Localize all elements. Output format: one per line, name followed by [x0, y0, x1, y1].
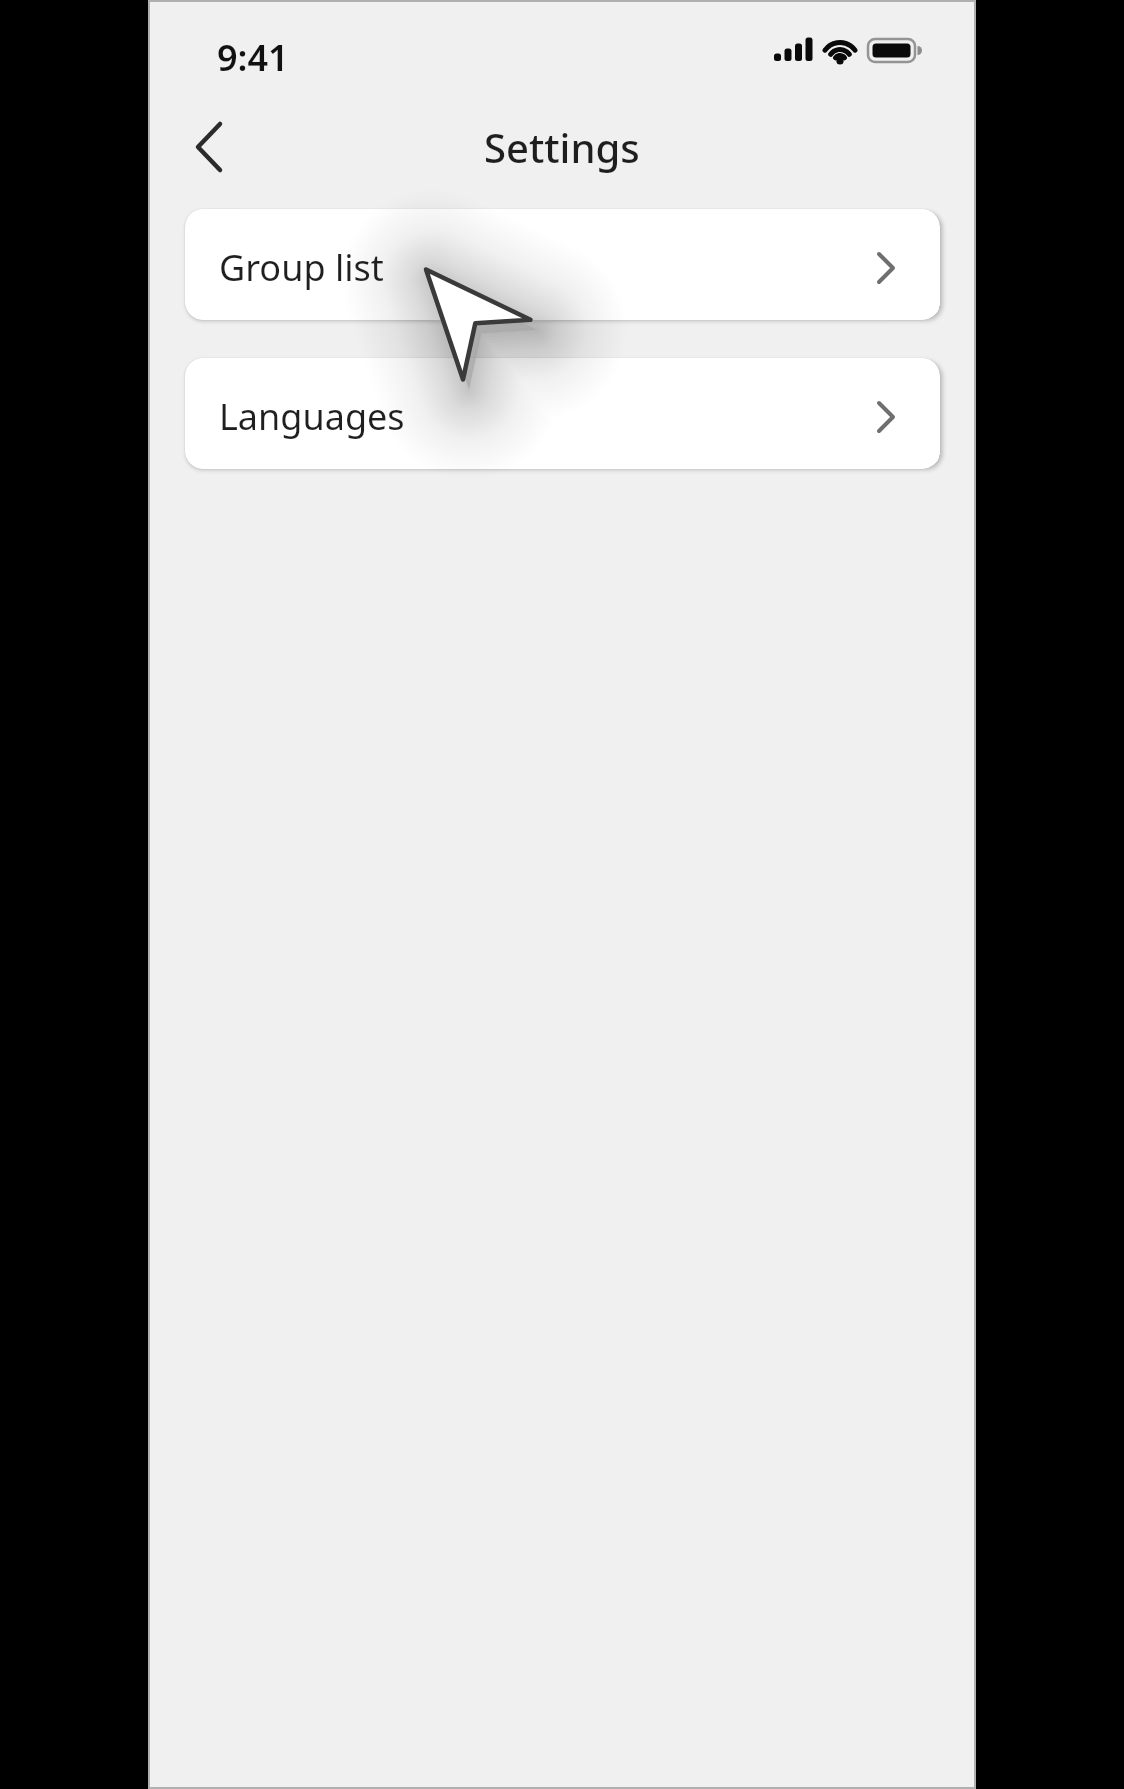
button[interactable]	[178, 116, 240, 178]
staticText: 9:41	[217, 33, 289, 75]
staticText: Group list	[219, 243, 384, 292]
button[interactable]: Languages	[185, 358, 940, 469]
button[interactable]: Group list	[185, 209, 940, 320]
staticText: Languages	[219, 392, 405, 441]
staticText: Settings	[484, 120, 640, 174]
